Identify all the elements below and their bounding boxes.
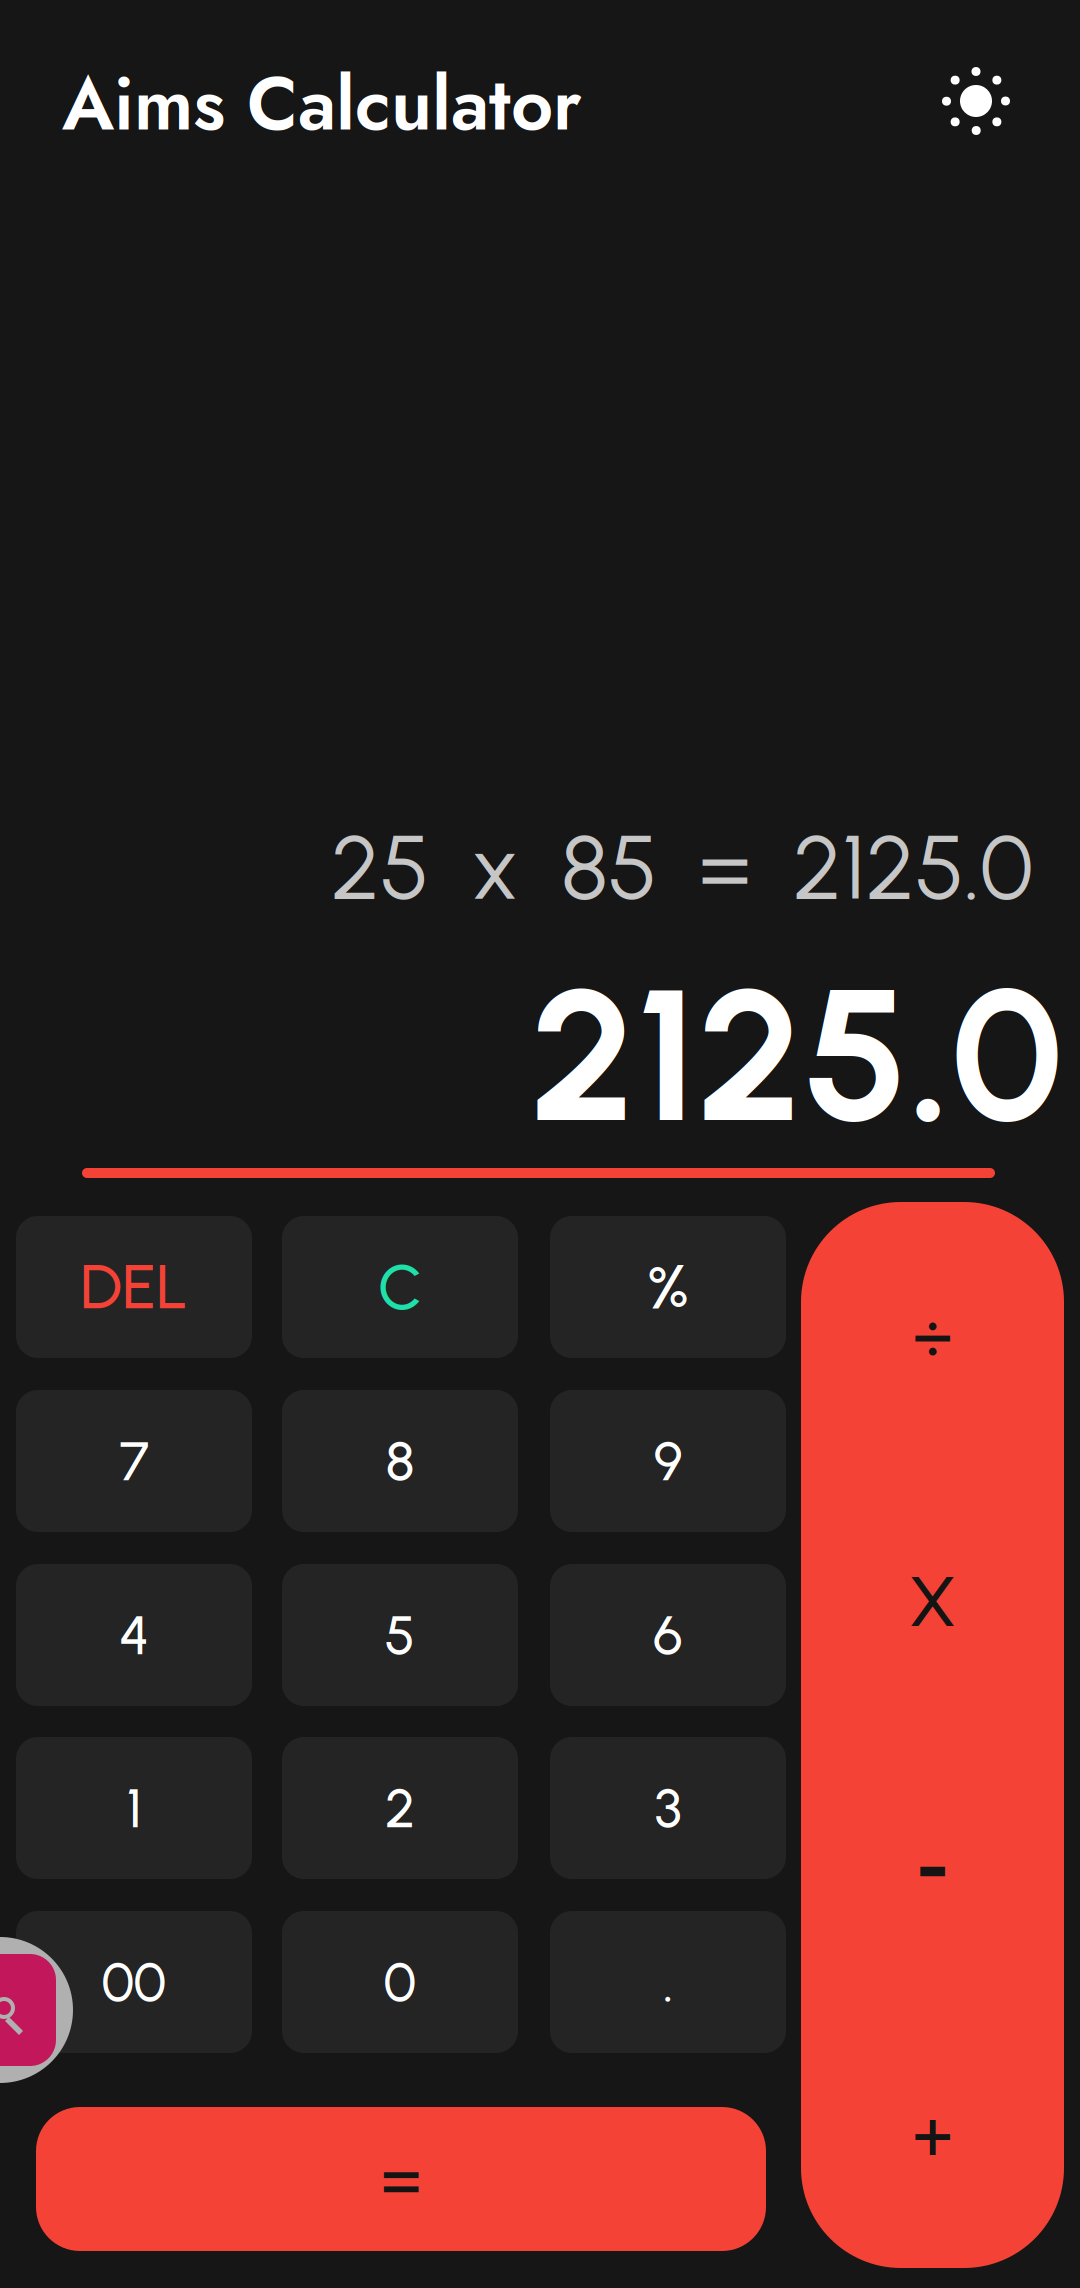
button[interactable]: 6 — [550, 1564, 786, 1706]
button[interactable]: 3 — [550, 1737, 786, 1879]
staticText: 3 — [654, 1775, 681, 1841]
staticText: DEL — [80, 1249, 188, 1325]
button[interactable]: . — [550, 1911, 786, 2053]
staticText: 0 — [383, 1949, 416, 2015]
button[interactable]: 9 — [550, 1390, 786, 1532]
button[interactable]: 4 — [16, 1564, 252, 1706]
staticText: 9 — [653, 1428, 682, 1494]
staticText: ÷ — [912, 1294, 952, 1377]
staticText: . — [663, 1949, 673, 2015]
button[interactable]: Search assistant — [0, 1937, 73, 2083]
staticText: 8 — [385, 1428, 414, 1494]
button[interactable]: ÷ — [801, 1202, 1064, 2268]
staticText: 25 x 85 = 2125.0 — [331, 814, 1033, 921]
staticText: 6 — [653, 1602, 683, 1668]
button[interactable]: DEL — [16, 1216, 252, 1358]
button[interactable]: C — [282, 1216, 518, 1358]
staticText: 2125.0 — [530, 944, 1063, 1166]
button[interactable]: 2 — [282, 1737, 518, 1879]
button[interactable]: Toggle brightness — [942, 67, 1010, 135]
staticText: X — [909, 1560, 956, 1643]
button[interactable]: 7 — [16, 1390, 252, 1532]
staticText: % — [647, 1249, 689, 1325]
staticText: 4 — [119, 1602, 149, 1668]
button[interactable]: 00 — [16, 1911, 252, 2053]
staticText: 5 — [384, 1602, 415, 1668]
button[interactable]: 0 — [282, 1911, 518, 2053]
staticText: = — [381, 2137, 421, 2221]
staticText: 2 — [385, 1775, 415, 1841]
staticText: + — [912, 2093, 952, 2176]
button[interactable]: 8 — [282, 1390, 518, 1532]
button[interactable]: = — [36, 2107, 766, 2251]
button[interactable]: % — [550, 1216, 786, 1358]
staticText: Aims Calculator — [62, 51, 582, 157]
button[interactable]: 5 — [282, 1564, 518, 1706]
staticText: 1 — [126, 1775, 141, 1841]
button[interactable]: Aims Calculator — [62, 51, 582, 157]
staticText: - — [915, 1822, 949, 1915]
staticText: 00 — [101, 1949, 166, 2015]
button[interactable]: 1 — [16, 1737, 252, 1879]
staticText: C — [378, 1249, 422, 1325]
staticText: 7 — [119, 1428, 148, 1494]
